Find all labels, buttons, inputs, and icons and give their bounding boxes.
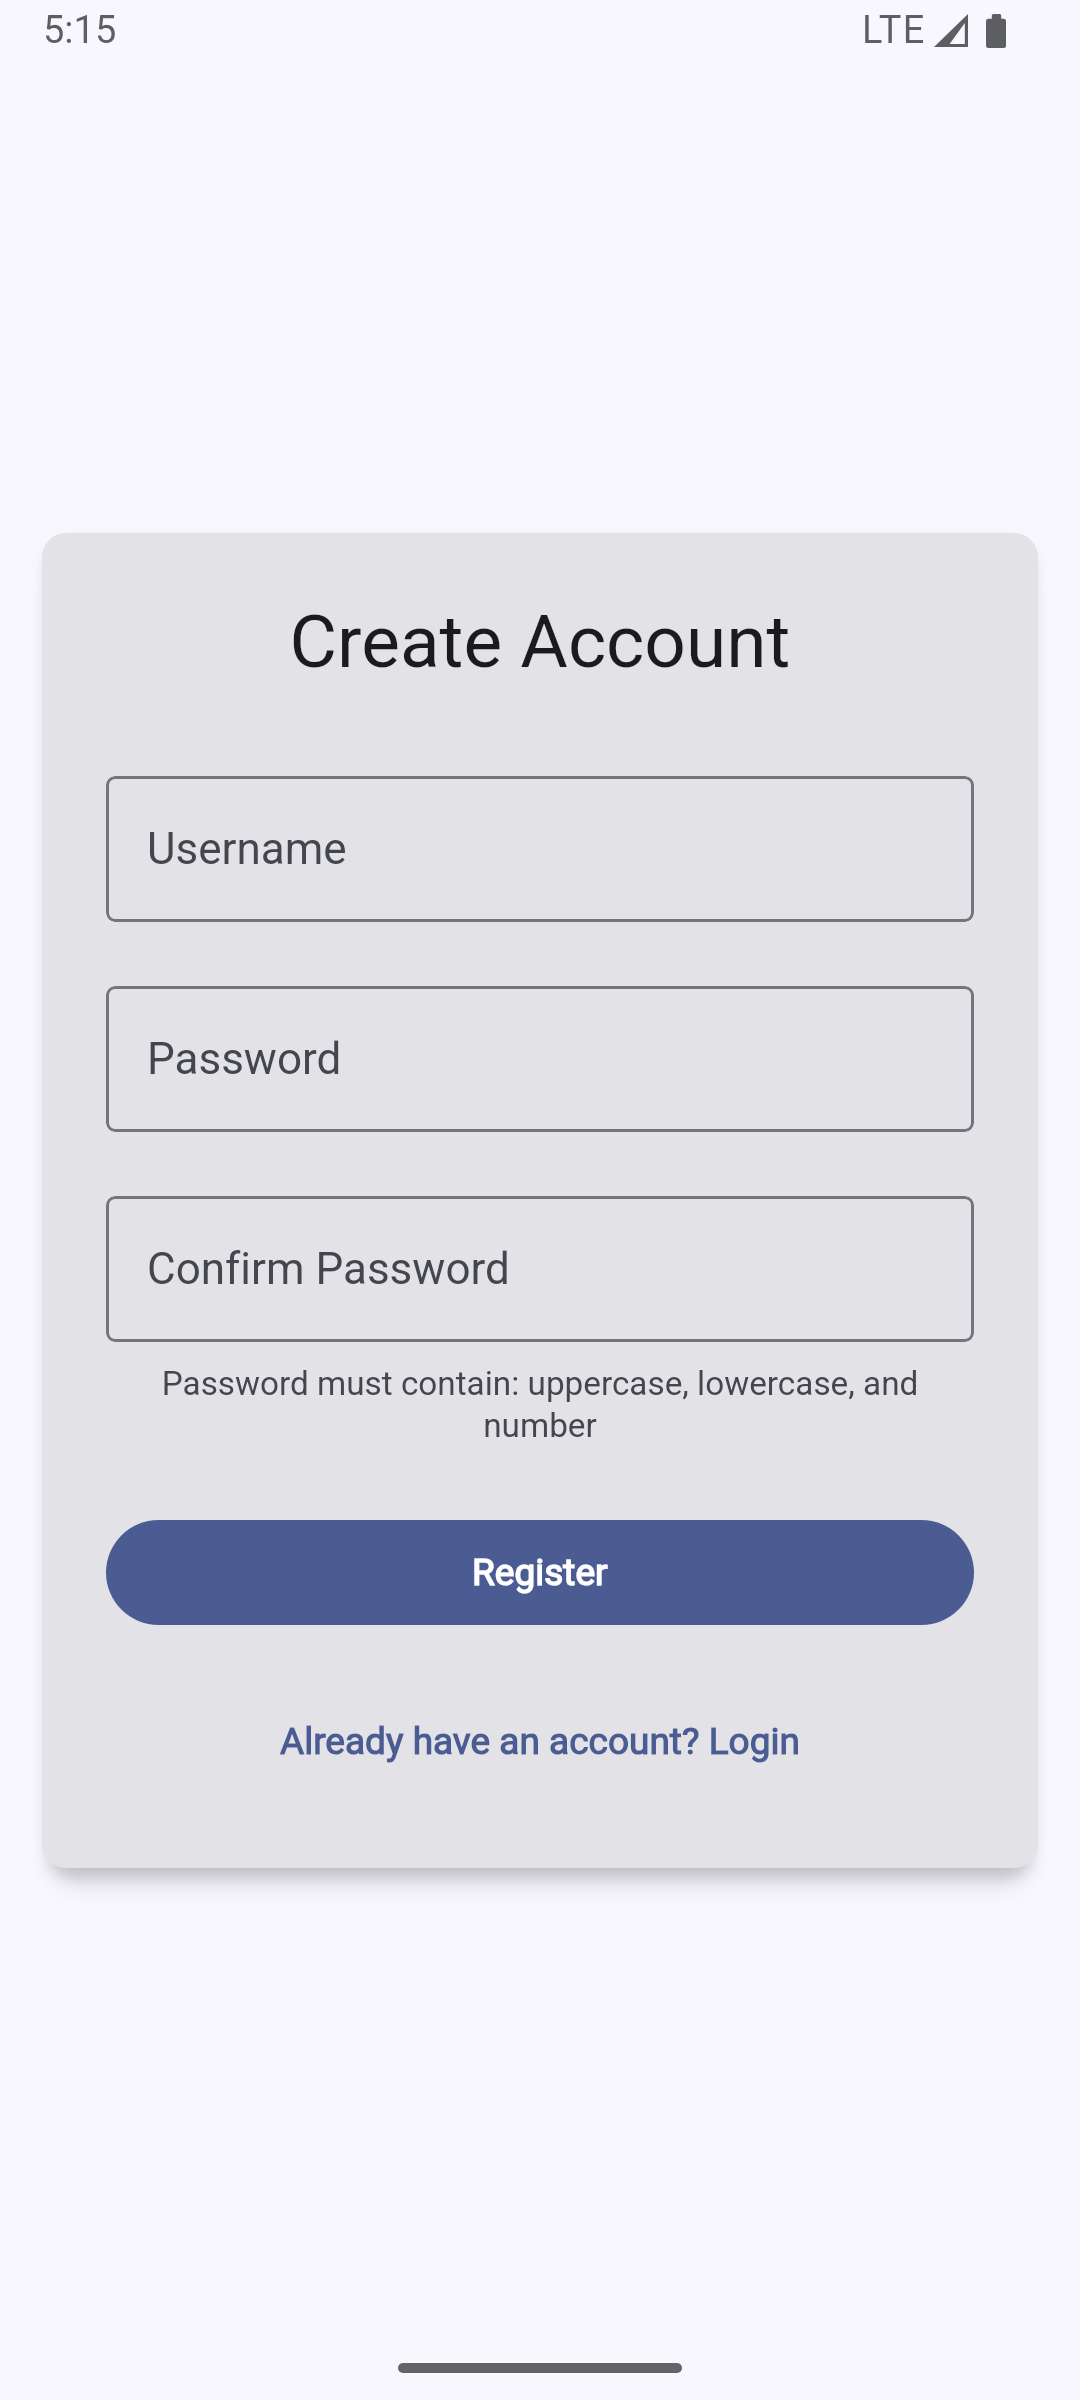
staticText: Username [147, 823, 347, 875]
other: Mobile signal [934, 14, 968, 47]
button[interactable]: Register [106, 1520, 974, 1625]
staticText: LTE [862, 8, 926, 53]
staticText: 5:15 [43, 8, 117, 53]
staticText: Password [147, 1033, 342, 1085]
button[interactable]: Confirm Password [106, 1196, 974, 1342]
staticText: Create Account [106, 599, 974, 685]
staticText: Confirm Password [147, 1243, 510, 1295]
staticText: Already have an account? Login [280, 1720, 800, 1763]
staticText: Password must contain: uppercase, lowerc… [106, 1364, 974, 1446]
button[interactable]: Username [106, 776, 974, 922]
button[interactable]: Password [106, 986, 974, 1132]
staticText: Register [472, 1551, 608, 1594]
button[interactable]: Already have an account? Login [106, 1720, 974, 1763]
other: Battery [986, 14, 1006, 48]
